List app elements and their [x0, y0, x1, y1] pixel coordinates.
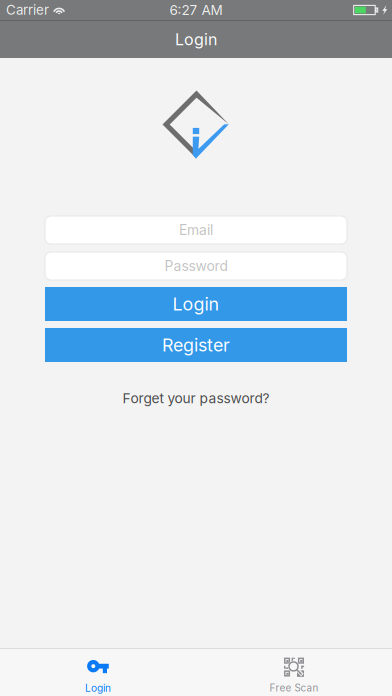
button[interactable]: Register — [0, 328, 392, 362]
staticText: Email — [179, 222, 213, 238]
staticText: Free Scan — [269, 682, 318, 694]
staticText: Register — [162, 334, 230, 356]
staticText: 6:27 AM — [169, 2, 222, 18]
staticText: Login — [85, 682, 111, 694]
staticText: Login — [175, 30, 217, 49]
staticText: Carrier — [6, 2, 49, 18]
staticText: Login — [172, 293, 219, 315]
button[interactable]: Login — [0, 287, 392, 321]
button[interactable]: Forget your password? — [122, 390, 269, 407]
staticText: Forget your password? — [122, 390, 269, 407]
staticText: Password — [164, 258, 227, 274]
button[interactable]: Free Scan — [196, 649, 392, 696]
button[interactable]: Login — [0, 649, 196, 696]
